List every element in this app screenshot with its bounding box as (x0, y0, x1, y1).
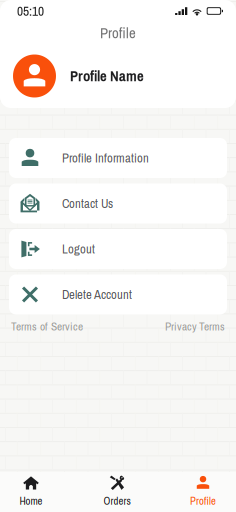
staticText: Profile (190, 494, 216, 508)
staticText: Orders (103, 494, 130, 508)
staticText: 05:10 (17, 2, 44, 20)
staticText: Delete Account (62, 286, 132, 303)
button[interactable]: Profile (172, 467, 234, 512)
button[interactable]: Delete Account (9, 274, 227, 314)
staticText: Terms of Service (11, 319, 83, 334)
staticText: Home (19, 494, 42, 508)
button[interactable]: Home (0, 467, 62, 512)
button[interactable]: Contact Us (9, 183, 227, 223)
staticText: Contact Us (62, 195, 113, 212)
staticText: Profile (100, 23, 136, 43)
button[interactable]: Privacy Terms (165, 319, 225, 334)
staticText: Profile Name (70, 66, 144, 86)
button[interactable]: Profile Information (9, 138, 227, 178)
button[interactable]: Orders (86, 467, 148, 512)
staticText: Privacy Terms (165, 319, 225, 334)
staticText: Logout (62, 240, 95, 258)
button[interactable]: Logout (9, 229, 227, 269)
staticText: Profile Information (62, 149, 149, 167)
button[interactable]: Terms of Service (11, 319, 83, 334)
